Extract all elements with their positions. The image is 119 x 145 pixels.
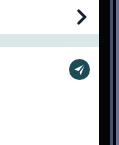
button[interactable]: Open details [70,5,94,29]
button[interactable]: Navigate [69,59,90,80]
